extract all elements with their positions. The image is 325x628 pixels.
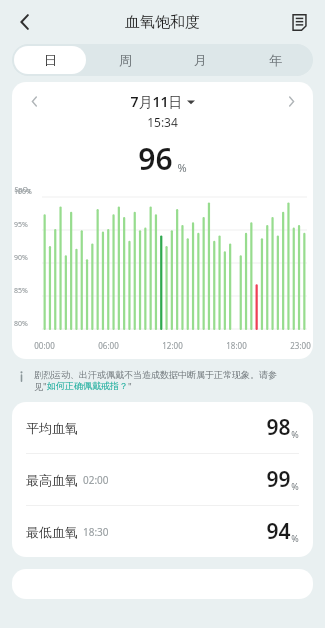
staticText: % [291, 480, 299, 492]
button[interactable]: 周 [90, 46, 161, 74]
staticText: 周 [119, 52, 132, 68]
staticText: 血氧饱和度 [125, 13, 200, 32]
staticText: 最高血氧 [26, 472, 78, 488]
staticText: 月 [194, 52, 207, 68]
button[interactable]: Previous day [22, 90, 46, 112]
staticText: 见" [34, 380, 47, 392]
button[interactable]: Back [8, 5, 42, 39]
staticText: 最低血氧 [26, 524, 78, 540]
button[interactable]: 如何正确佩戴戒指？ [47, 380, 128, 391]
button[interactable]: Next day [279, 90, 303, 112]
staticText: " [128, 380, 132, 392]
button[interactable]: 平均血氧 [12, 402, 313, 453]
staticText: 剧烈运动、出汗或佩戴不当造成数据中断属于正常现象。请参 [34, 369, 277, 380]
staticText: SpO₂ [14, 185, 31, 195]
staticText: 12:00 [162, 340, 183, 351]
staticText: 99 [266, 465, 291, 494]
staticText: 06:00 [98, 340, 119, 351]
staticText: 如何正确佩戴戒指？ [47, 380, 128, 391]
staticText: 15:34 [147, 114, 178, 130]
staticText: 18:00 [226, 340, 247, 351]
staticText: 100% [14, 187, 32, 197]
staticText: 平均血氧 [26, 420, 78, 436]
button[interactable]: 日 [14, 46, 86, 74]
staticText: 02:00 [83, 473, 109, 487]
staticText: 94 [266, 517, 291, 546]
button[interactable]: 最低血氧 [12, 506, 313, 557]
staticText: 85% [14, 286, 28, 296]
button[interactable]: 最高血氧 [12, 454, 313, 505]
staticText: 90% [14, 253, 28, 263]
staticText: 18:30 [83, 525, 109, 539]
staticText: 23:00 [290, 340, 311, 351]
staticText: 00:00 [34, 340, 55, 351]
staticText: 日 [44, 52, 57, 68]
button[interactable]: 月 [165, 46, 236, 74]
staticText: 95% [14, 220, 28, 230]
staticText: 年 [269, 52, 282, 68]
button[interactable]: 7月11日 [130, 92, 195, 111]
button[interactable]: 年 [240, 46, 311, 74]
staticText: % [291, 532, 299, 544]
staticText: 96 [138, 138, 173, 179]
button[interactable]: Records [283, 6, 315, 38]
staticText: 80% [14, 319, 28, 329]
staticText: % [177, 160, 187, 175]
staticText: 7月11日 [130, 92, 183, 111]
staticText: % [291, 428, 299, 440]
staticText: 98 [266, 413, 291, 442]
